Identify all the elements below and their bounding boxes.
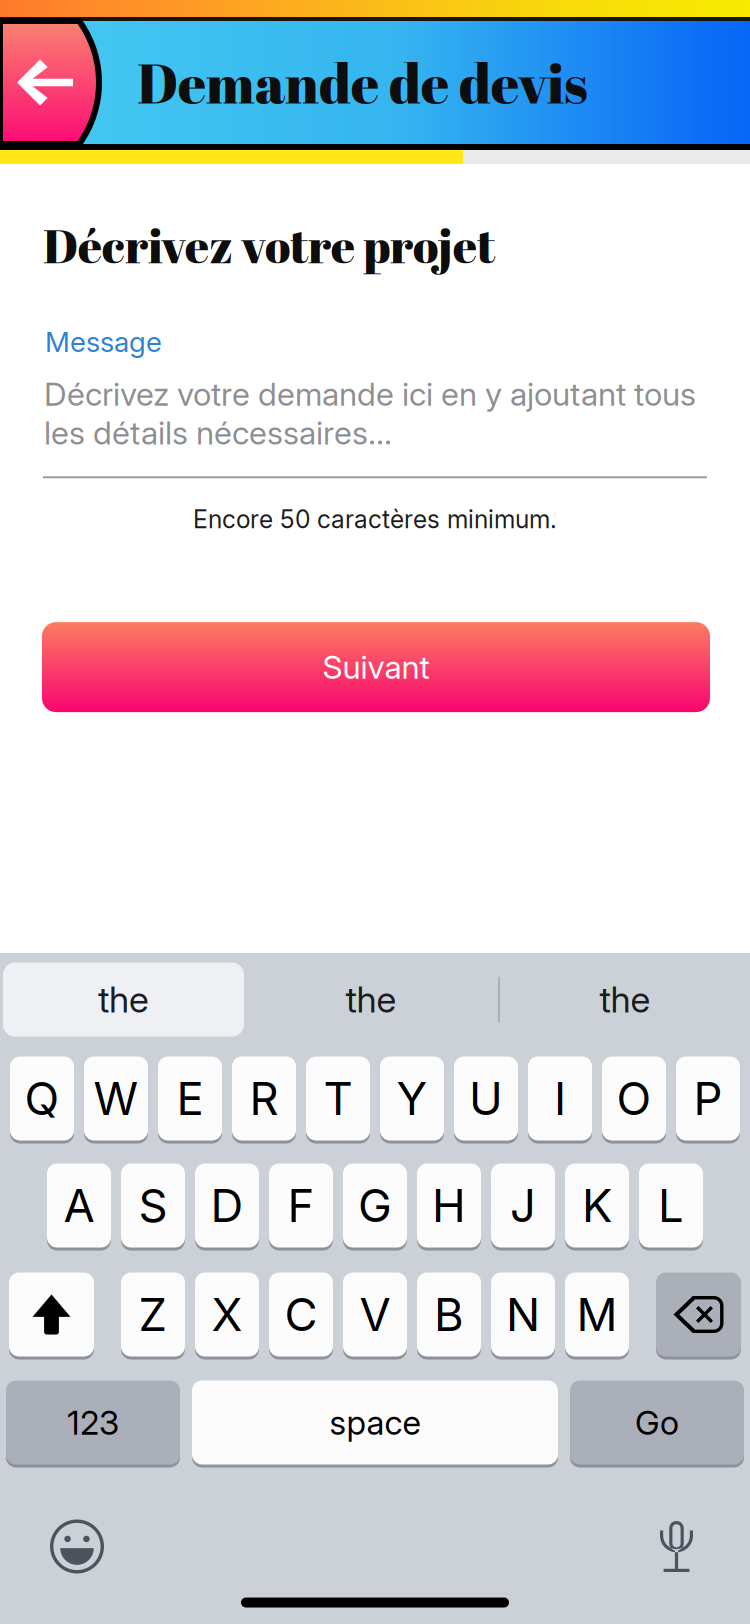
button[interactable]: P (676, 1056, 740, 1143)
staticText: L (658, 1178, 684, 1233)
staticText: Z (138, 1287, 167, 1342)
staticText: J (510, 1178, 536, 1233)
button[interactable]: the (0, 962, 244, 1036)
staticText: B (434, 1287, 464, 1342)
staticText: V (359, 1287, 390, 1342)
staticText: Go (635, 1402, 679, 1443)
staticText: E (176, 1071, 203, 1126)
staticText: I (554, 1071, 566, 1126)
button[interactable]: Z (121, 1272, 185, 1359)
button[interactable]: S (121, 1163, 185, 1250)
button[interactable]: O (602, 1056, 666, 1143)
staticText: A (63, 1178, 94, 1233)
button[interactable]: U (454, 1056, 518, 1143)
staticText: Décrivez votre demande ici en y ajoutant… (44, 375, 696, 452)
button[interactable]: the (244, 962, 498, 1036)
button[interactable]: Go (570, 1380, 744, 1467)
button[interactable]: Suivant (42, 622, 710, 712)
button[interactable]: K (565, 1163, 629, 1250)
staticText: R (249, 1071, 278, 1126)
staticText: Q (24, 1071, 59, 1126)
button[interactable]: X (195, 1272, 259, 1359)
button[interactable]: R (232, 1056, 296, 1143)
button[interactable]: Shift (9, 1272, 94, 1359)
staticText: T (323, 1071, 352, 1126)
button[interactable]: Delete (656, 1272, 741, 1359)
button[interactable]: F (269, 1163, 333, 1250)
staticText: Décrivez votre projet (43, 214, 495, 277)
staticText: W (93, 1071, 138, 1126)
button[interactable]: C (269, 1272, 333, 1359)
button[interactable]: D (195, 1163, 259, 1250)
button[interactable]: G (343, 1163, 407, 1250)
button[interactable]: L (639, 1163, 703, 1250)
button[interactable]: W (84, 1056, 148, 1143)
button[interactable]: V (343, 1272, 407, 1359)
staticText: P (693, 1071, 722, 1126)
button[interactable]: Back (0, 21, 99, 144)
staticText: the (345, 978, 396, 1021)
staticText: 123 (67, 1402, 119, 1443)
button[interactable]: H (417, 1163, 481, 1250)
staticText: the (599, 978, 650, 1021)
button[interactable]: E (158, 1056, 222, 1143)
button[interactable]: B (417, 1272, 481, 1359)
button[interactable]: M (565, 1272, 629, 1359)
staticText: M (576, 1287, 617, 1342)
button[interactable]: I (528, 1056, 592, 1143)
staticText: Message (45, 325, 162, 359)
staticText: Suivant (322, 648, 429, 686)
button[interactable]: Q (10, 1056, 74, 1143)
staticText: D (210, 1178, 243, 1233)
button[interactable]: the (500, 962, 750, 1036)
button[interactable]: Dictate (636, 1505, 750, 1588)
button[interactable]: J (491, 1163, 555, 1250)
staticText: X (211, 1287, 242, 1342)
button[interactable]: 123 (6, 1380, 180, 1467)
staticText: U (469, 1071, 503, 1126)
staticText: Demande de devis (137, 46, 588, 119)
staticText: C (284, 1287, 317, 1342)
staticText: O (616, 1071, 651, 1126)
staticText: H (432, 1178, 466, 1233)
button[interactable]: T (306, 1056, 370, 1143)
button[interactable]: N (491, 1272, 555, 1359)
staticText: K (582, 1178, 612, 1233)
staticText: N (506, 1287, 540, 1342)
staticText: Encore 50 caractères minimum. (193, 504, 557, 534)
staticText: Y (396, 1071, 427, 1126)
staticText: space (329, 1402, 420, 1443)
button[interactable]: Emoji keyboard (0, 1503, 128, 1589)
button[interactable]: A (47, 1163, 111, 1250)
button[interactable]: Y (380, 1056, 444, 1143)
staticText: the (98, 978, 149, 1021)
staticText: S (138, 1178, 167, 1233)
staticText: G (358, 1178, 392, 1233)
button[interactable]: space (192, 1380, 558, 1467)
staticText: F (287, 1178, 314, 1233)
